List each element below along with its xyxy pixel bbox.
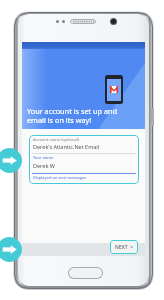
button[interactable]: Home	[68, 267, 103, 279]
staticText: Derek's Atlantic.Net Email	[33, 143, 100, 150]
staticText: Your account is set up and email is on i…	[27, 106, 118, 125]
staticText: Your name	[33, 155, 54, 160]
staticText: Account name (optional)	[33, 137, 79, 142]
staticText: Derek W	[33, 162, 55, 169]
button[interactable]: Next step	[0, 237, 22, 262]
staticText: NEXT >	[115, 244, 133, 251]
button[interactable]: NEXT >	[110, 240, 138, 254]
button[interactable]: Account name (optional)	[29, 135, 139, 184]
button[interactable]: Next step	[0, 148, 22, 173]
staticText: Displayed on sent messages	[33, 175, 87, 180]
